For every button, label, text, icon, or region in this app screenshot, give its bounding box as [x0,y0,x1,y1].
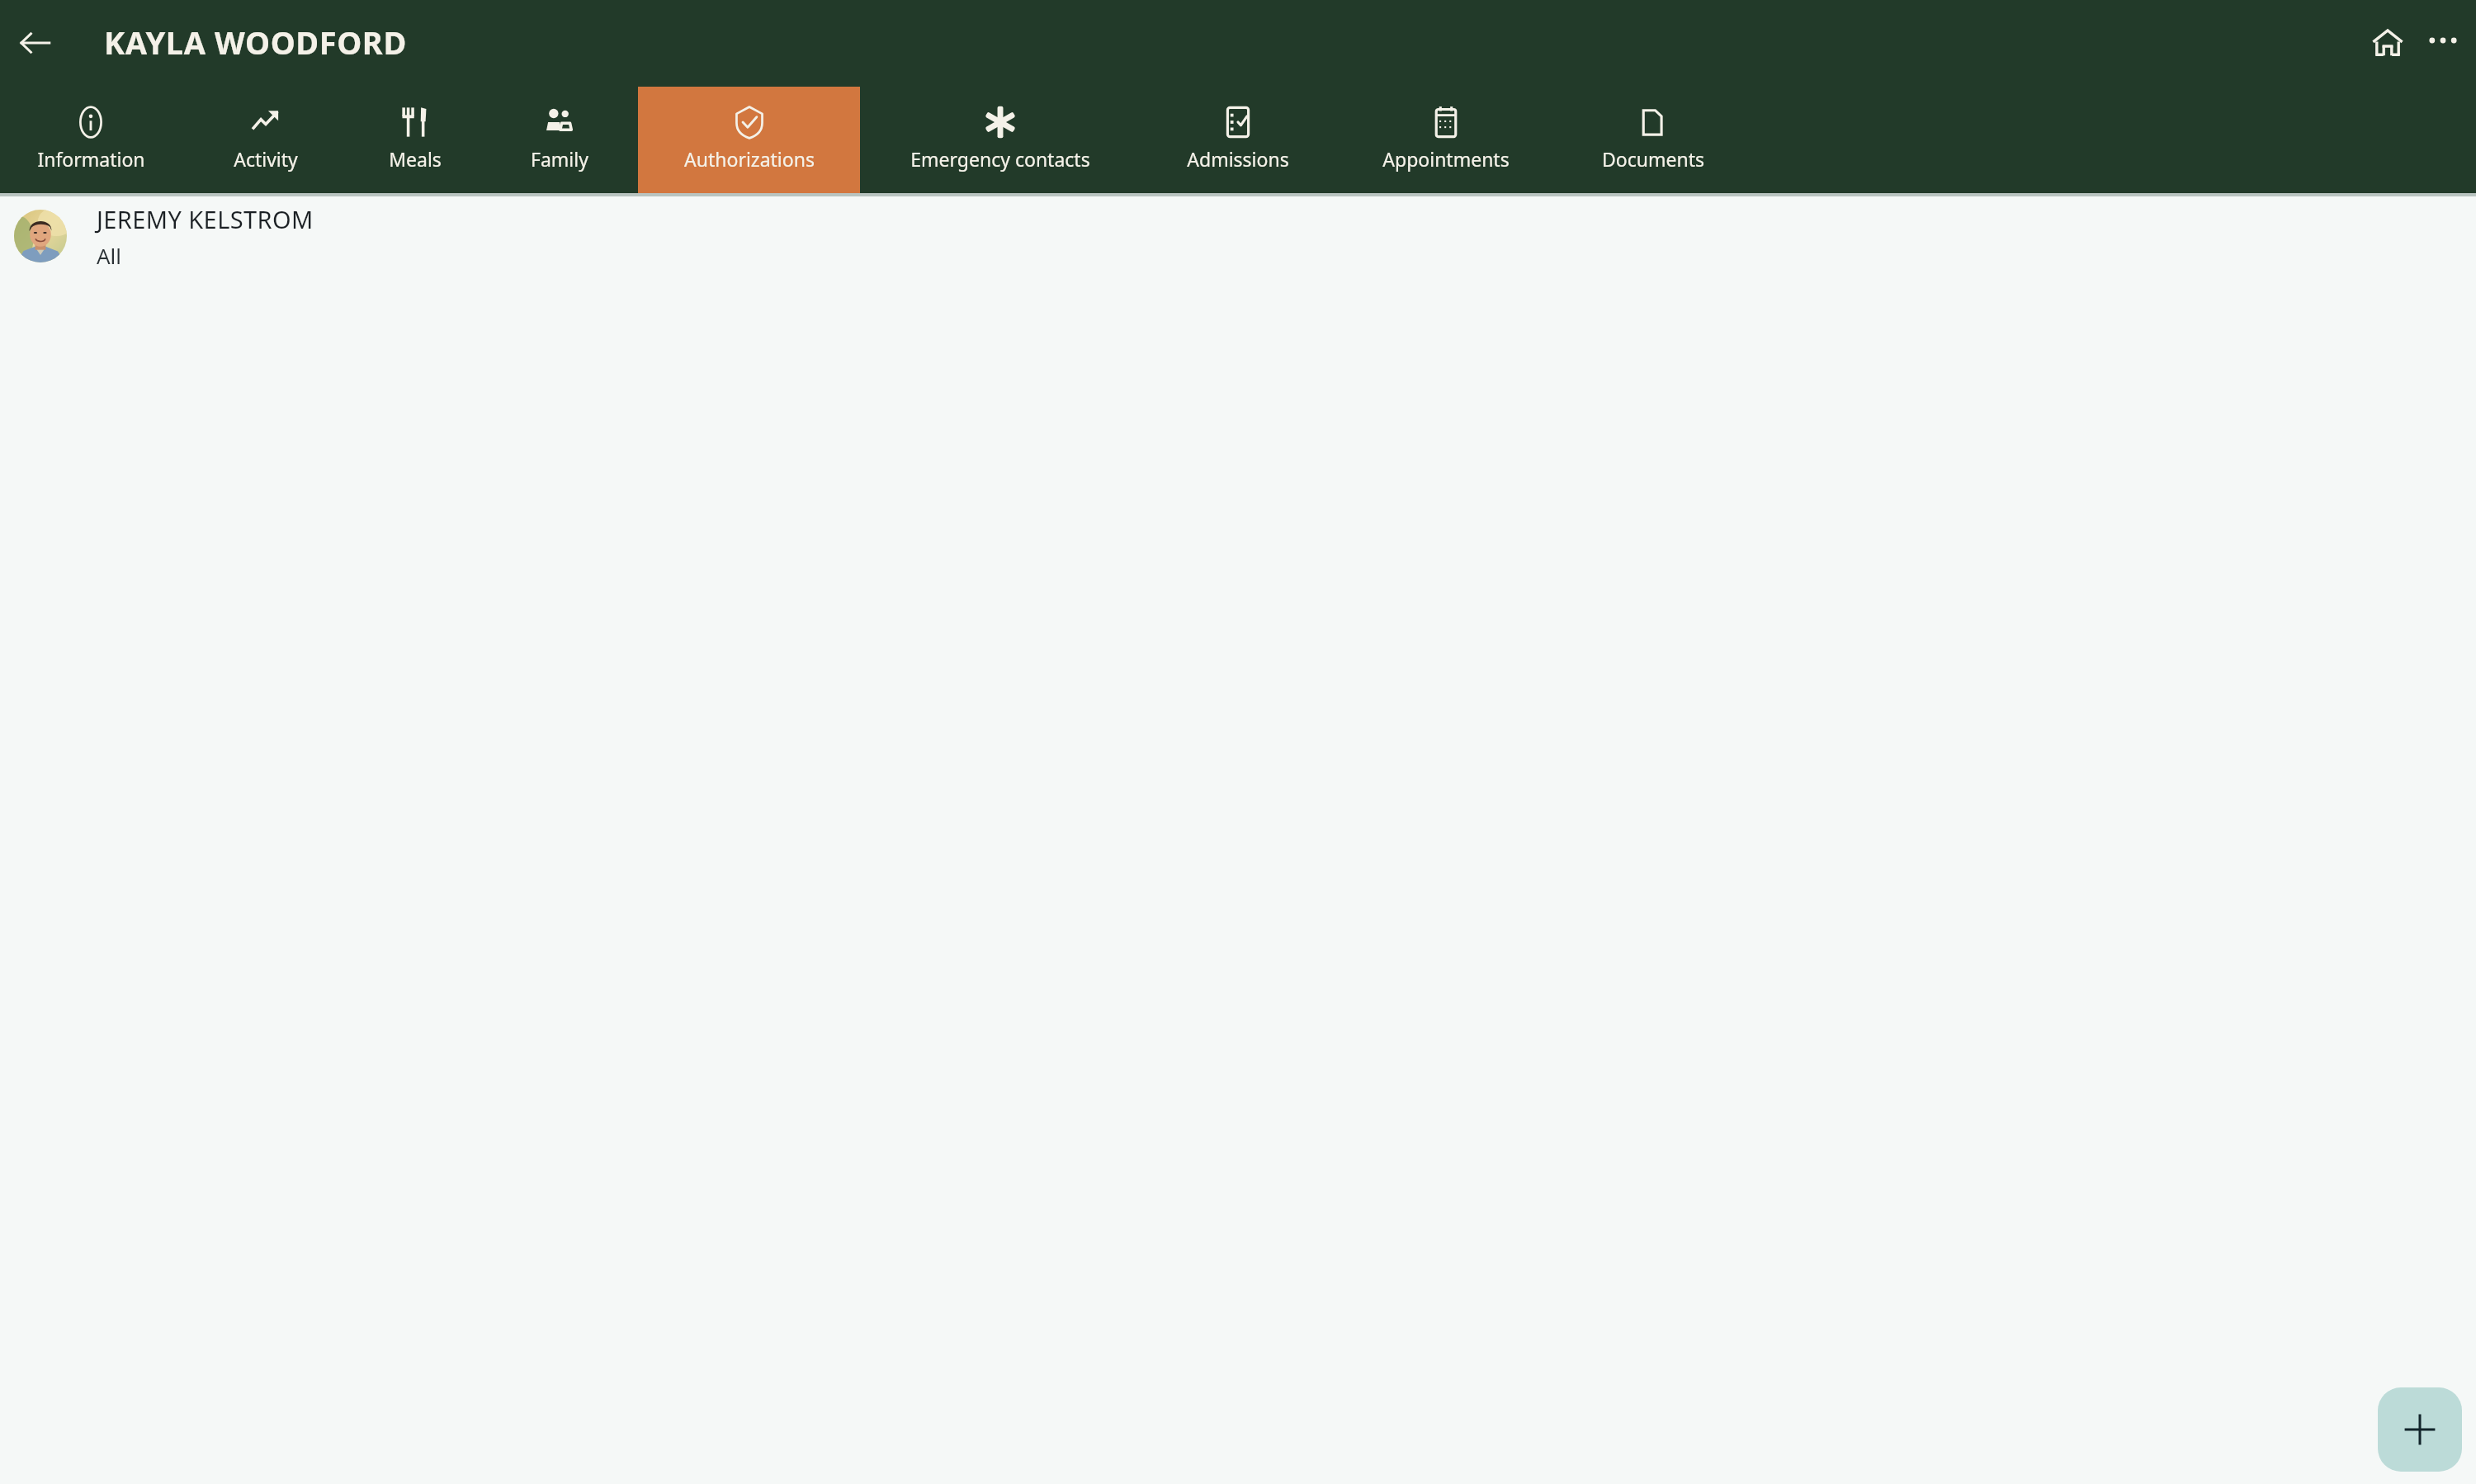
button[interactable]: Activity [182,87,349,193]
button[interactable]: Appointments [1335,87,1557,193]
button[interactable]: Home [2356,11,2420,75]
button[interactable]: Back [7,14,64,72]
button[interactable]: Authorizations [638,87,860,193]
staticText: JEREMY KELSTROM [97,203,314,235]
button[interactable]: Emergency contacts [860,87,1141,193]
staticText: Family [531,146,588,172]
button[interactable]: Admissions [1141,87,1335,193]
staticText: Admissions [1187,146,1289,172]
staticText: Authorizations [684,146,815,172]
button[interactable]: Documents [1557,87,1749,193]
button[interactable]: Meals [349,87,481,193]
button[interactable]: Information [0,87,182,193]
staticText: Documents [1602,146,1704,172]
staticText: KAYLA WOODFORD [104,21,407,64]
staticText: Activity [234,146,298,172]
staticText: Information [37,146,145,172]
button[interactable]: Family [481,87,638,193]
button[interactable]: JEREMY KELSTROM [0,196,2476,276]
staticText: Meals [389,146,442,172]
staticText: All [97,241,122,270]
staticText: Appointments [1382,146,1510,172]
button[interactable]: More options [2413,11,2473,70]
staticText: Emergency contacts [910,146,1090,172]
button[interactable]: Add [2378,1387,2462,1472]
